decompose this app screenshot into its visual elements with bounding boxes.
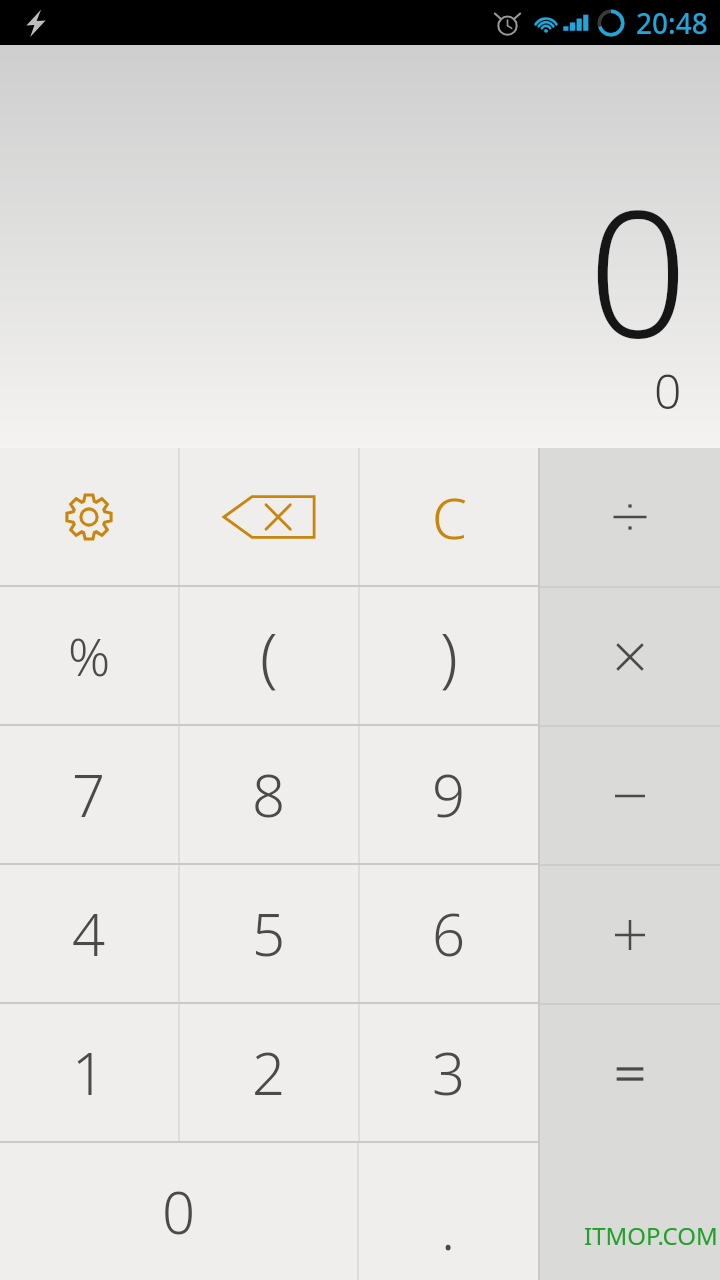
button[interactable]: Backspace <box>180 448 358 585</box>
button[interactable]: Add <box>540 866 720 1003</box>
button[interactable]: 3 <box>360 1004 538 1141</box>
staticText: 7 <box>72 755 106 834</box>
button[interactable]: 6 <box>360 865 538 1002</box>
button[interactable]: 2 <box>180 1004 358 1141</box>
staticText: % <box>68 620 111 691</box>
button[interactable]: Subtract <box>540 727 720 864</box>
button[interactable]: 7 <box>0 726 178 863</box>
staticText: 9 <box>432 755 466 834</box>
button[interactable]: % <box>0 587 178 724</box>
staticText: 4 <box>72 894 106 973</box>
staticText: ITMOP.COM <box>584 1219 718 1252</box>
staticText: 8 <box>252 755 286 834</box>
staticText: 0 <box>162 1172 196 1251</box>
button[interactable]: Divide <box>540 448 720 586</box>
staticText: 0 <box>588 150 688 388</box>
button[interactable]: 1 <box>0 1004 178 1141</box>
staticText: 2 <box>252 1033 286 1112</box>
button[interactable]: 9 <box>360 726 538 863</box>
button[interactable]: . <box>359 1143 538 1280</box>
button[interactable]: ) <box>360 587 538 724</box>
staticText: 5 <box>252 894 286 973</box>
staticText: ) <box>440 612 458 699</box>
button[interactable]: Equals <box>540 1005 720 1280</box>
staticText: 3 <box>432 1033 466 1112</box>
staticText: 1 <box>72 1033 106 1112</box>
staticText: 20:48 <box>636 4 708 42</box>
staticText: 6 <box>432 894 466 973</box>
button[interactable]: 5 <box>180 865 358 1002</box>
staticText: 0 <box>654 358 682 423</box>
button[interactable]: 8 <box>180 726 358 863</box>
button[interactable]: C <box>360 448 538 585</box>
staticText: ( <box>260 612 278 699</box>
staticText: . <box>441 1188 456 1267</box>
button[interactable]: ( <box>180 587 358 724</box>
staticText: C <box>432 479 467 555</box>
button[interactable]: Multiply <box>540 588 720 725</box>
button[interactable]: 4 <box>0 865 178 1002</box>
button[interactable]: 0 <box>0 1143 357 1280</box>
button[interactable]: Settings <box>0 448 178 585</box>
